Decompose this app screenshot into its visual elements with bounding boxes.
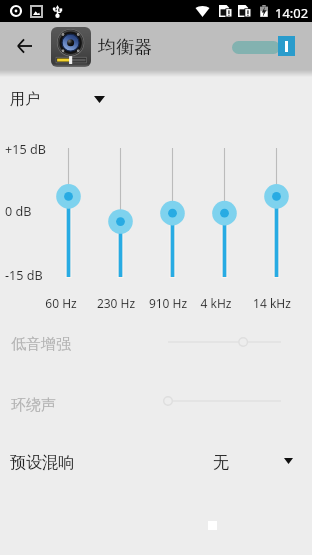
staticText: 无	[213, 453, 229, 473]
button[interactable]: Enable equalizer	[226, 30, 300, 62]
staticText: 环绕声	[11, 396, 56, 415]
staticText: 0 dB	[5, 203, 32, 220]
staticText: 均衡器	[98, 36, 152, 59]
staticText: +15 dB	[5, 141, 46, 158]
button[interactable]: 用户	[0, 82, 312, 116]
staticText: 14:02	[275, 4, 309, 22]
staticText: 910 Hz	[138, 295, 198, 311]
staticText: 14 kHz	[242, 295, 302, 311]
button[interactable]: 预设混响	[0, 446, 312, 480]
staticText: 4 kHz	[186, 295, 246, 311]
staticText: 预设混响	[10, 453, 74, 473]
button[interactable]: Back	[6, 28, 42, 64]
button[interactable]: 低音增强	[0, 328, 312, 360]
staticText: 低音增强	[11, 335, 71, 354]
staticText: 60 Hz	[31, 295, 91, 311]
staticText: 230 Hz	[86, 295, 146, 311]
button[interactable]: 环绕声	[0, 389, 312, 421]
staticText: -15 dB	[5, 267, 43, 284]
staticText: 用户	[10, 90, 40, 109]
